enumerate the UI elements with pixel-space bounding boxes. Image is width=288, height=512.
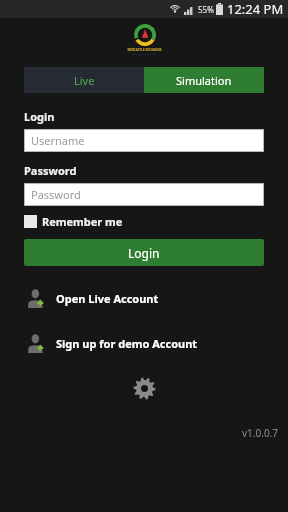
staticText: 12:24 PM <box>227 0 284 18</box>
button[interactable]: Simulation <box>144 67 264 93</box>
staticText: Username <box>31 133 85 148</box>
staticText: www.mercastle.com <box>133 52 157 55</box>
staticText: MERCASTLE EXCHANGE <box>127 48 162 52</box>
staticText: Open Live Account <box>56 291 159 306</box>
button[interactable]: Sign up for demo Account <box>0 329 288 357</box>
staticText: Password <box>24 163 77 178</box>
button[interactable]: Password <box>24 183 264 206</box>
staticText: Live <box>74 73 95 88</box>
staticText: Login <box>128 245 160 261</box>
staticText: Password <box>31 187 81 202</box>
staticText: Simulation <box>176 73 232 88</box>
button[interactable]: Live <box>24 67 144 93</box>
button[interactable]: Username <box>24 129 264 152</box>
staticText: Login <box>24 109 55 124</box>
button[interactable]: Login <box>24 239 264 266</box>
staticText: v1.0.0.7 <box>242 426 278 440</box>
staticText: Remember me <box>42 214 123 229</box>
button[interactable]: Settings <box>129 373 159 403</box>
staticText: 55% <box>198 4 214 15</box>
button[interactable]: Remember me <box>24 212 123 231</box>
button[interactable]: Open Live Account <box>0 284 288 312</box>
staticText: Sign up for demo Account <box>56 336 198 351</box>
